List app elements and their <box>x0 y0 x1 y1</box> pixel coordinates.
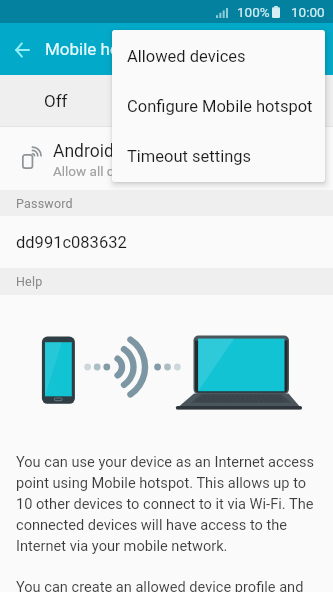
staticText: You can use your device as an Internet a… <box>16 453 316 554</box>
staticText: Allowed devices <box>127 47 246 66</box>
staticText: Allow all devices <box>53 163 153 179</box>
button[interactable]: Allowed devices <box>112 31 325 81</box>
staticText: Password <box>16 196 73 211</box>
button[interactable]: Configure Mobile hotspot <box>112 81 325 131</box>
staticText: Help <box>16 274 43 289</box>
button[interactable]: Back <box>6 33 39 66</box>
staticText: 100% <box>237 4 270 20</box>
button[interactable]: AndroidAP7a2b <box>0 127 333 190</box>
button[interactable]: Timeout settings <box>112 131 325 181</box>
staticText: Mobile hotspot <box>45 39 159 59</box>
staticText: AndroidAP7a2b <box>53 141 176 162</box>
staticText: dd991c083632 <box>16 233 127 252</box>
staticText: Off <box>44 91 68 111</box>
button[interactable]: Off <box>0 75 333 126</box>
staticText: Timeout settings <box>127 147 252 166</box>
staticText: Configure Mobile hotspot <box>127 97 313 116</box>
staticText: You can create an allowed device profile… <box>16 578 304 592</box>
staticText: 10:00 <box>291 4 325 20</box>
button[interactable]: dd991c083632 <box>0 216 333 268</box>
